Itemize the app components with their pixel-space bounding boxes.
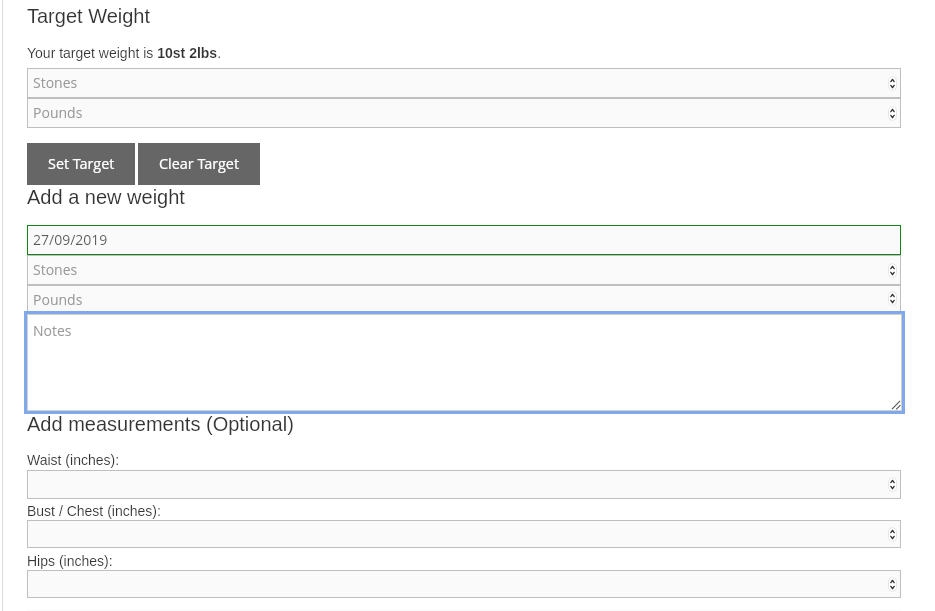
staticText: Pounds	[33, 103, 83, 122]
staticText: Clear Target	[159, 154, 239, 174]
button[interactable]: Waist in inches	[27, 470, 901, 499]
staticText: Target Weight	[27, 5, 151, 27]
button[interactable]: Clear Target	[138, 143, 260, 185]
staticText: Your target weight is 10st 2lbs.	[27, 45, 222, 61]
button[interactable]: Stones	[27, 68, 901, 98]
button[interactable]: Stones	[27, 255, 901, 285]
staticText: Waist (inches):	[27, 452, 120, 468]
button[interactable]: Pounds	[27, 98, 901, 128]
button[interactable]: Pounds	[27, 285, 901, 312]
button[interactable]: Bust or chest in inches	[27, 520, 901, 548]
staticText: Add a new weight	[27, 186, 185, 208]
button[interactable]: Set Target	[27, 143, 135, 185]
staticText: Set Target	[48, 154, 115, 174]
button[interactable]: Hips in inches	[27, 570, 901, 598]
button[interactable]: Notes	[24, 311, 905, 414]
staticText: Hips (inches):	[27, 553, 113, 569]
button[interactable]: 27/09/2019	[27, 225, 901, 255]
staticText: Add measurements (Optional)	[27, 413, 294, 435]
staticText: Bust / Chest (inches):	[27, 503, 161, 519]
staticText: Stones	[33, 260, 78, 279]
staticText: Pounds	[33, 290, 83, 309]
staticText: Stones	[33, 73, 78, 92]
staticText: 27/09/2019	[33, 230, 108, 249]
staticText: Notes	[33, 321, 72, 340]
